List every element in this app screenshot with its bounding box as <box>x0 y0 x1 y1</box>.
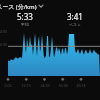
button[interactable]: 5:33 <box>0 11 50 26</box>
staticText: ベスト <box>69 22 82 26</box>
staticText: 12:19 <box>21 83 31 88</box>
button[interactable]: 3:41 <box>50 11 100 26</box>
staticText: 49:18 <box>76 83 86 88</box>
staticText: 36:58 <box>58 83 68 88</box>
staticText: ペース (分/km) <box>0 3 37 11</box>
staticText: 平均 <box>21 22 29 26</box>
staticText: 5:33 <box>17 11 33 22</box>
button[interactable]: ペース (分/km) <box>0 0 100 11</box>
staticText: 6:00 <box>0 42 7 47</box>
staticText: 4:00 <box>0 29 7 34</box>
other: Change metric <box>37 2 45 10</box>
staticText: 3:41 <box>67 11 83 22</box>
staticText: 24:39 <box>40 83 50 88</box>
staticText: 0:00 <box>4 83 12 88</box>
